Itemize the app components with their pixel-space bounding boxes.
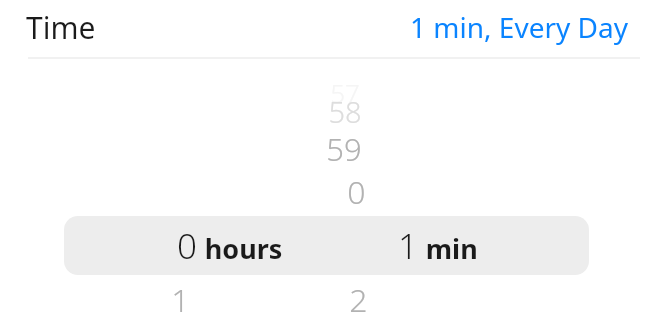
staticText: 1 [171, 278, 190, 322]
staticText: 58 [328, 92, 362, 131]
staticText: 57 [330, 75, 360, 110]
staticText: 59 [326, 128, 362, 170]
staticText: 1 min [398, 222, 478, 270]
button[interactable]: Time [26, 6, 176, 48]
staticText: 0 hours [177, 222, 283, 270]
staticText: 0 [347, 170, 366, 214]
staticText: Time [26, 7, 96, 48]
staticText: 2 [349, 278, 368, 322]
button[interactable] [64, 216, 589, 275]
staticText: 1 min, Every Day [410, 8, 628, 46]
button[interactable]: 1 min, Every Day [360, 6, 628, 48]
